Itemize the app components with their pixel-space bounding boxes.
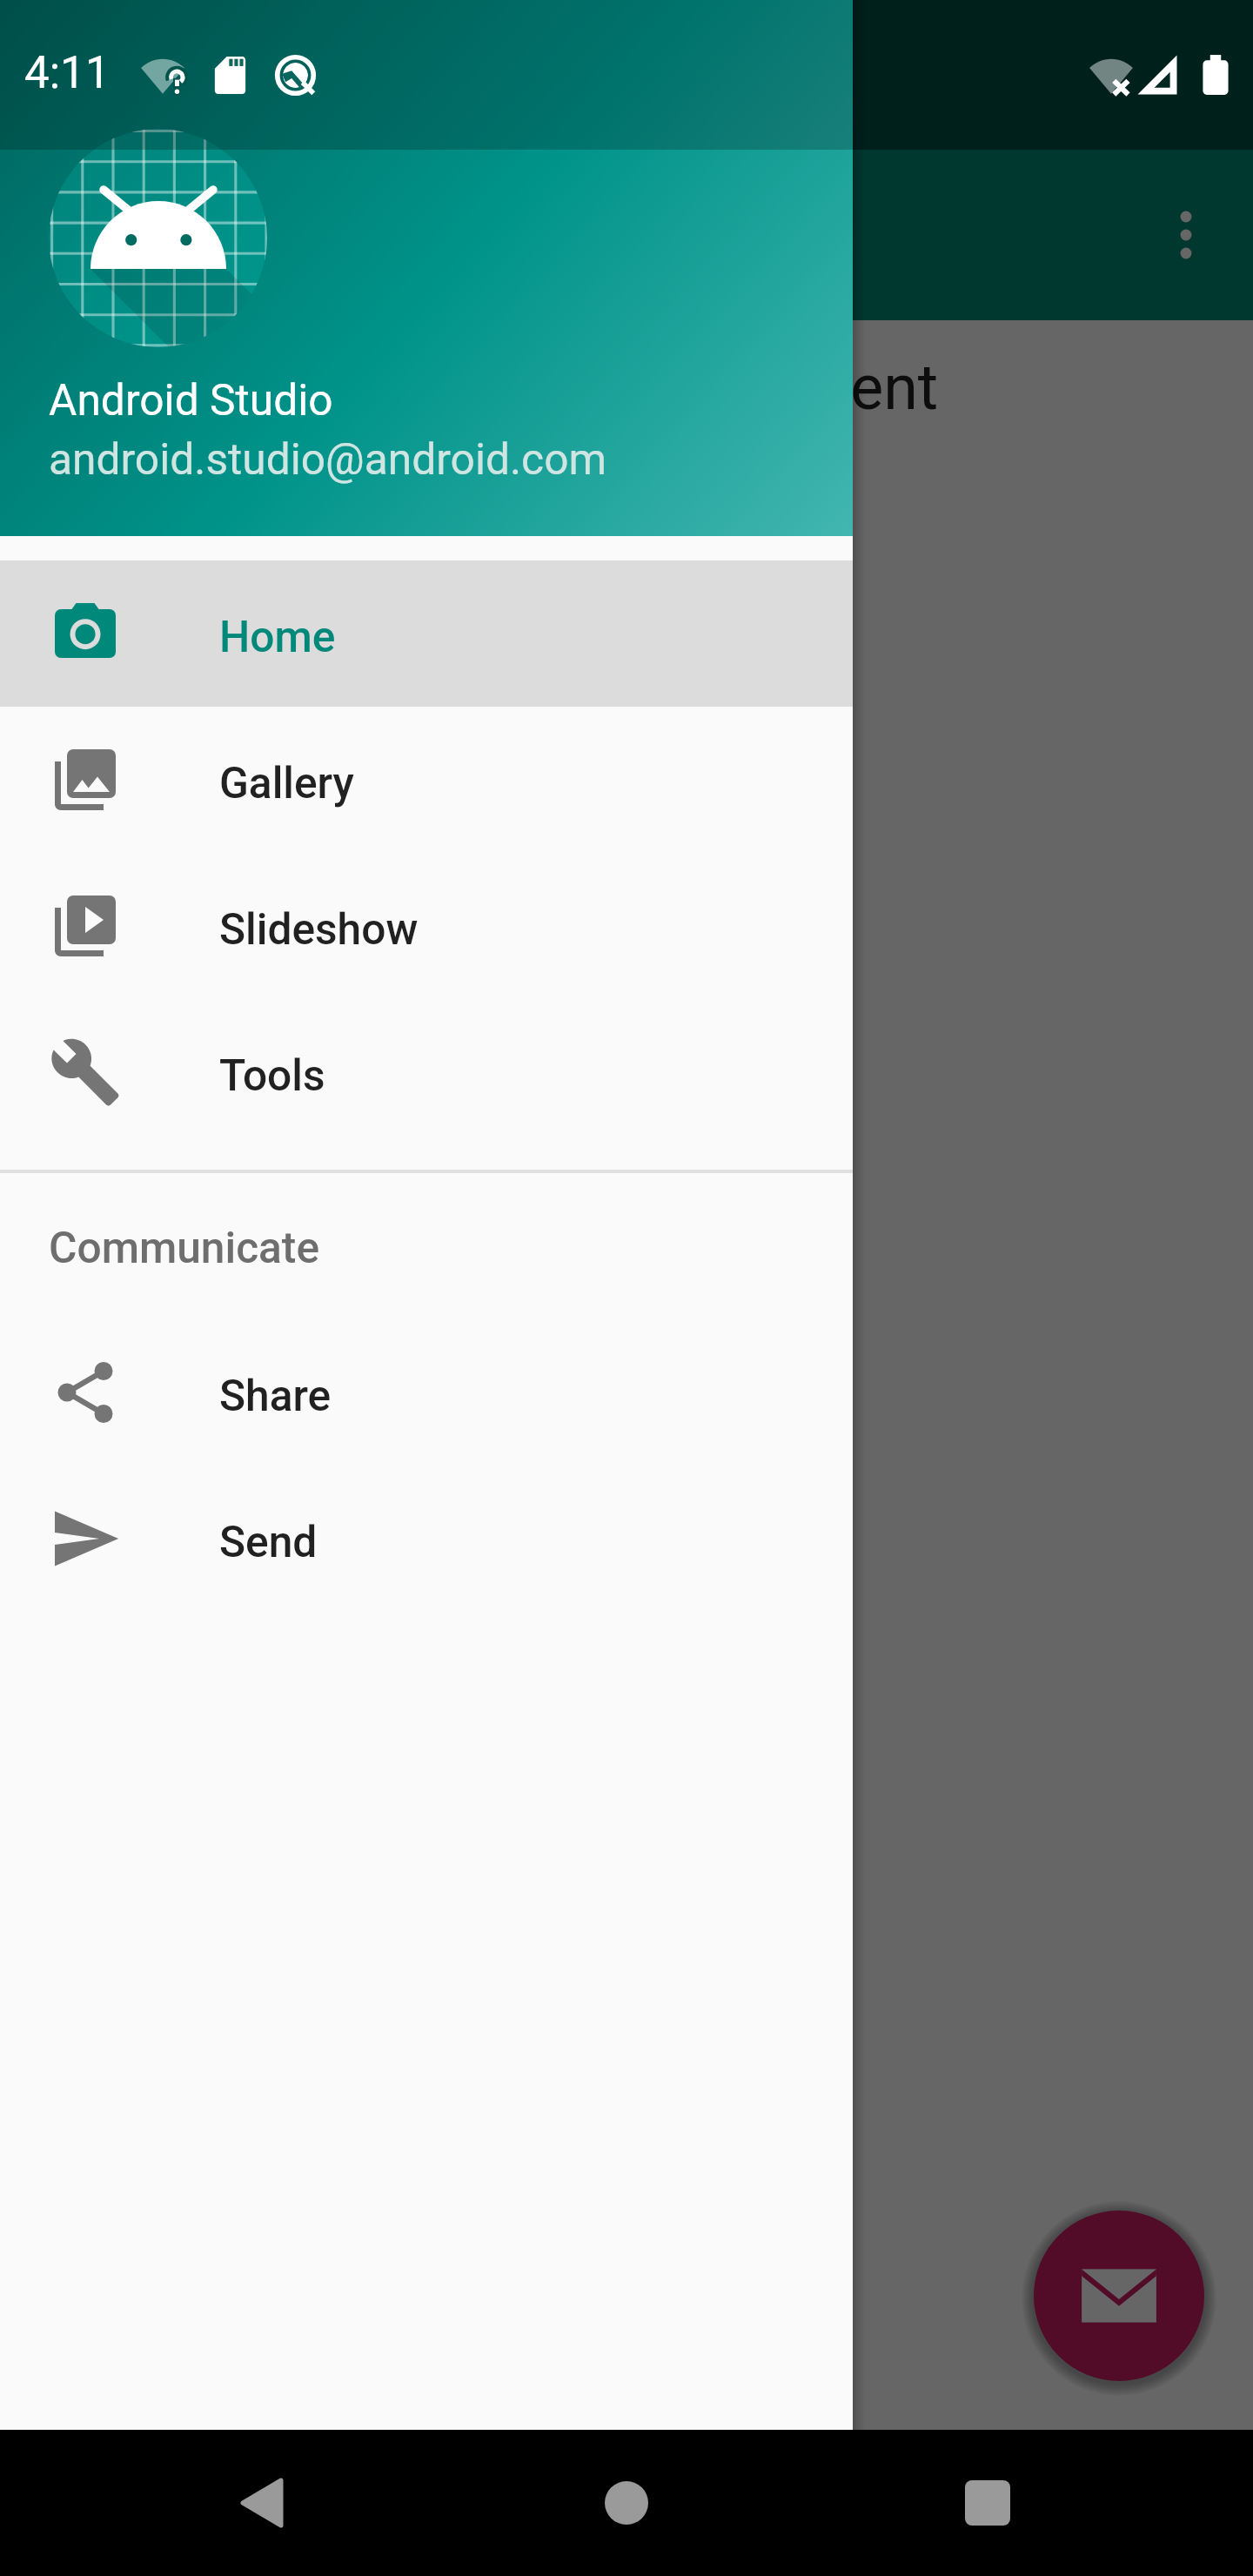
staticText: 4:11 xyxy=(24,47,111,99)
button[interactable]: Send email xyxy=(1034,2210,1204,2381)
button[interactable]: Slideshow xyxy=(0,853,853,999)
button[interactable]: Tools xyxy=(0,999,853,1145)
staticText: Communicate xyxy=(49,1223,320,1273)
staticText: Home xyxy=(219,612,336,662)
button[interactable]: Send xyxy=(0,1466,853,1612)
staticText: This is home fragment xyxy=(314,351,939,424)
button[interactable]: Gallery xyxy=(0,707,853,853)
staticText: Share xyxy=(219,1371,332,1421)
staticText: android.studio@android.com xyxy=(49,434,607,485)
button[interactable]: Share xyxy=(0,1319,853,1466)
staticText: Slideshow xyxy=(219,904,419,955)
staticText: Send xyxy=(219,1517,318,1567)
staticText: Android Studio xyxy=(49,375,333,426)
button[interactable]: More options xyxy=(1113,162,1253,308)
staticText: Gallery xyxy=(219,758,354,808)
button[interactable]: Home xyxy=(0,560,853,707)
staticText: NavDrawer xyxy=(219,199,518,271)
staticText: Tools xyxy=(219,1050,325,1101)
